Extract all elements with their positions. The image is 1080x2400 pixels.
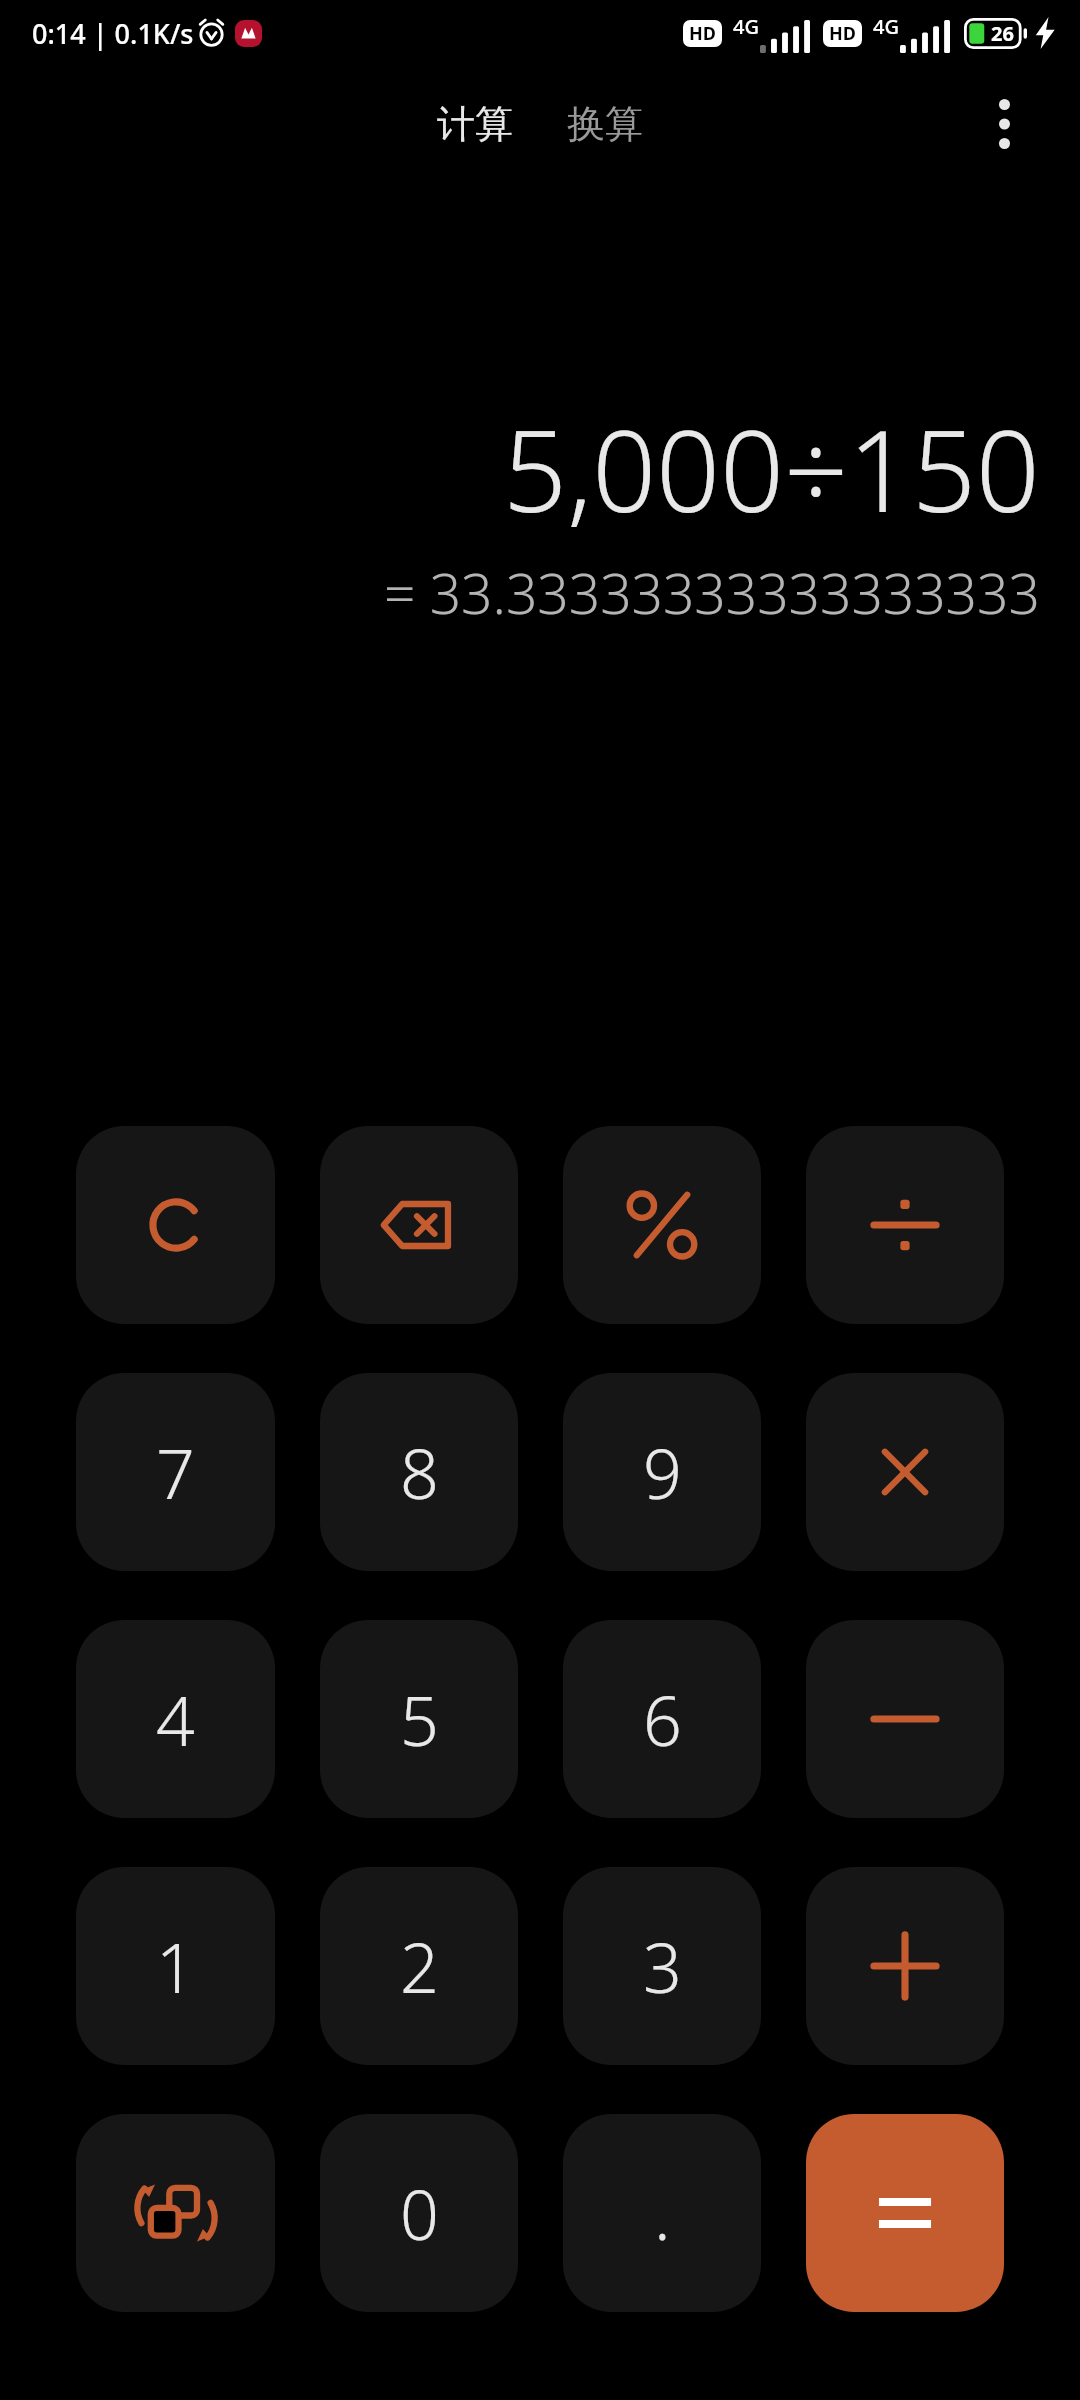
- button[interactable]: Multiply: [806, 1373, 1004, 1571]
- staticText: 26: [991, 20, 1014, 47]
- other: Plus: [863, 1924, 947, 2008]
- staticText: 计算: [437, 100, 513, 148]
- button[interactable]: 0: [320, 2114, 518, 2312]
- button[interactable]: Divide: [806, 1126, 1004, 1324]
- staticText: 0: [400, 2167, 439, 2260]
- staticText: HD: [829, 21, 856, 46]
- button[interactable]: 1: [76, 1867, 275, 2065]
- button[interactable]: More options: [966, 86, 1042, 162]
- staticText: 换算: [567, 100, 643, 148]
- other: Divide: [863, 1183, 947, 1267]
- other: Percent: [620, 1183, 704, 1267]
- staticText: 8: [400, 1426, 439, 1519]
- staticText: HD: [689, 21, 716, 46]
- button[interactable]: Minus: [806, 1620, 1004, 1818]
- button[interactable]: 6: [563, 1620, 761, 1818]
- button[interactable]: Equals: [806, 2114, 1004, 2312]
- staticText: 5: [400, 1673, 439, 1766]
- button[interactable]: 9: [563, 1373, 761, 1571]
- staticText: 4: [156, 1673, 195, 1766]
- button[interactable]: Clear: [76, 1126, 275, 1324]
- other: Backspace: [377, 1183, 461, 1267]
- button[interactable]: Backspace: [320, 1126, 518, 1324]
- staticText: .: [654, 2167, 671, 2260]
- staticText: 4G: [873, 13, 899, 40]
- staticText: 9: [643, 1426, 682, 1519]
- button[interactable]: .: [563, 2114, 761, 2312]
- button[interactable]: Convert units: [76, 2114, 275, 2312]
- button[interactable]: 7: [76, 1373, 275, 1571]
- other: Convert units: [134, 2171, 218, 2255]
- staticText: 5,000÷150: [503, 392, 1040, 545]
- staticText: 2: [400, 1920, 439, 2013]
- staticText: 1: [156, 1920, 195, 2013]
- other: Multiply: [863, 1430, 947, 1514]
- staticText: 0:14 | 0.1K/s: [32, 15, 194, 52]
- button[interactable]: 8: [320, 1373, 518, 1571]
- other: Minus: [863, 1677, 947, 1761]
- staticText: 4G: [733, 13, 759, 40]
- button[interactable]: 3: [563, 1867, 761, 2065]
- button[interactable]: Plus: [806, 1867, 1004, 2065]
- staticText: = 33.33333333333333333: [384, 555, 1040, 630]
- staticText: 3: [643, 1920, 682, 2013]
- button[interactable]: 4: [76, 1620, 275, 1818]
- button[interactable]: 换算: [551, 90, 659, 158]
- button[interactable]: 5: [320, 1620, 518, 1818]
- staticText: 7: [156, 1426, 195, 1519]
- button[interactable]: 计算: [421, 90, 529, 158]
- other: Equals: [863, 2171, 947, 2255]
- button[interactable]: Percent: [563, 1126, 761, 1324]
- button[interactable]: 2: [320, 1867, 518, 2065]
- other: Clear: [134, 1183, 218, 1267]
- staticText: 6: [643, 1673, 682, 1766]
